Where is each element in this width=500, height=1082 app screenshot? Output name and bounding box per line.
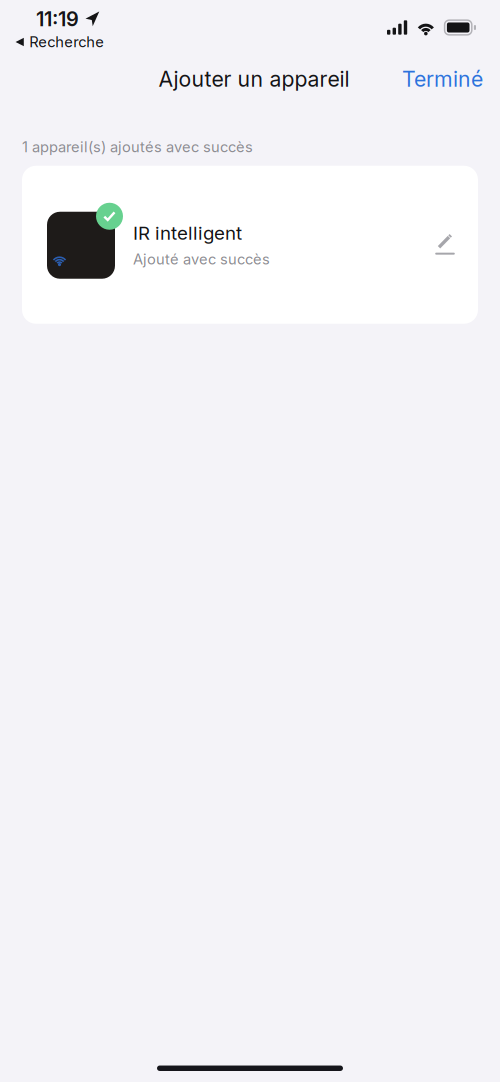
button[interactable]: Recherche (0, 36, 116, 56)
staticText: Ajouter un appareil (158, 66, 349, 92)
staticText: IR intelligent (133, 222, 242, 244)
staticText: Recherche (29, 33, 104, 51)
button[interactable]: Terminé (400, 66, 485, 92)
staticText: 1 appareil(s) ajoutés avec succès (22, 138, 253, 156)
staticText: 11:19 (36, 7, 79, 31)
staticText: Terminé (402, 66, 483, 92)
button[interactable]: Renommer l'appareil (412, 214, 478, 276)
staticText: Ajouté avec succès (133, 250, 270, 268)
